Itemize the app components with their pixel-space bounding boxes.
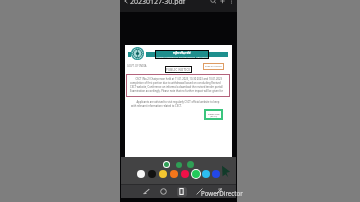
button[interactable]: Color [169, 169, 179, 179]
button[interactable]: Color [158, 169, 168, 179]
staticText: completion of first portion due to withd… [130, 81, 226, 85]
button[interactable]: Color [201, 169, 211, 179]
button[interactable]: Search [209, 0, 218, 5]
button[interactable]: Color [191, 169, 201, 179]
button[interactable]: Brush size [186, 160, 195, 169]
button[interactable]: Brush size [174, 160, 183, 169]
staticText: NATIONAL BOARD OF EXAMINATIONS, NEW DELH… [156, 56, 208, 59]
button[interactable]: Line [194, 186, 205, 197]
button[interactable]: Color [180, 169, 190, 179]
button[interactable]: Ellipse [158, 186, 169, 197]
staticText: (EXAM) [210, 115, 218, 118]
staticText: PUBLIC NOTICE [205, 65, 222, 68]
button[interactable]: Add note [218, 0, 227, 5]
staticText: 20230127-30.pdf [130, 0, 186, 5]
staticText: राष्ट्रीय परीक्षा बोर्ड [173, 51, 191, 55]
button[interactable]: Color [211, 169, 221, 179]
button[interactable]: Color [136, 169, 146, 179]
staticText: PUBLIC NOTICE [166, 68, 191, 72]
button[interactable]: Freehand [141, 186, 152, 197]
button[interactable]: Brush size [162, 160, 171, 169]
staticText: DIRECTOR [208, 112, 220, 115]
button[interactable]: Arrow [213, 186, 224, 197]
staticText: GOVT. OF INDIA [127, 64, 147, 68]
staticText: Examination accordingly. Please note tha… [130, 89, 226, 93]
button[interactable]: Color [147, 169, 157, 179]
button[interactable]: Back [121, 0, 130, 5]
button[interactable]: More options [227, 0, 236, 5]
staticText: CSCT website, Conference an informal a d… [130, 85, 226, 89]
button[interactable]: Rectangle [176, 186, 187, 197]
staticText: CSCT (No.2) Chairperson held at 11.01.20… [130, 77, 226, 81]
staticText: Applicants are advised to visit regularl… [131, 100, 229, 104]
staticText: with relevant information related to CSC… [131, 104, 182, 108]
staticText: PowerDirector [201, 189, 243, 197]
